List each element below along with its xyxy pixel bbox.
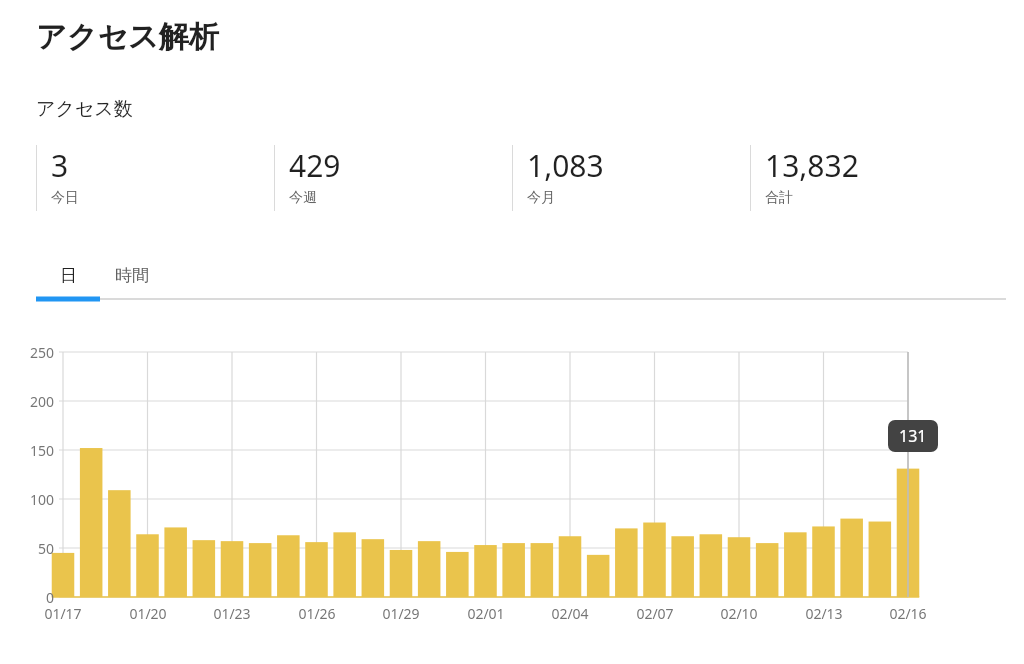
staticText: 429	[289, 145, 341, 186]
staticText: 250	[29, 343, 54, 362]
staticText: 今週	[289, 189, 317, 207]
staticText: 02/10	[720, 604, 758, 623]
button[interactable]: 1,083	[512, 145, 750, 211]
button[interactable]: 429	[274, 145, 512, 211]
staticText: 合計	[765, 189, 793, 207]
staticText: 131	[899, 425, 927, 447]
button[interactable]: 時間	[100, 252, 164, 298]
staticText: 01/23	[213, 604, 251, 623]
button[interactable]: Selected value 131	[888, 420, 938, 452]
staticText: アクセス数	[36, 97, 133, 121]
staticText: 時間	[115, 265, 149, 286]
staticText: 01/26	[298, 604, 336, 623]
staticText: 13,832	[765, 145, 859, 186]
staticText: 02/07	[636, 604, 674, 623]
staticText: 02/16	[889, 604, 927, 623]
staticText: 02/01	[467, 604, 505, 623]
staticText: 3	[51, 145, 69, 186]
button[interactable]: 13,832	[750, 145, 988, 211]
staticText: 50	[37, 539, 54, 558]
staticText: 1,083	[527, 145, 604, 186]
staticText: 01/20	[129, 604, 167, 623]
staticText: 今日	[51, 189, 79, 207]
staticText: アクセス解析	[36, 18, 219, 56]
staticText: 100	[29, 490, 54, 509]
staticText: 日	[60, 265, 77, 286]
button[interactable]: 3	[36, 145, 274, 211]
staticText: 02/04	[551, 604, 589, 623]
staticText: 02/13	[805, 604, 843, 623]
staticText: 150	[29, 441, 54, 460]
button[interactable]: 日	[36, 252, 100, 298]
staticText: 01/17	[44, 604, 82, 623]
staticText: 今月	[527, 189, 555, 207]
staticText: 200	[29, 392, 54, 411]
staticText: 0	[45, 588, 54, 607]
staticText: 01/29	[382, 604, 420, 623]
